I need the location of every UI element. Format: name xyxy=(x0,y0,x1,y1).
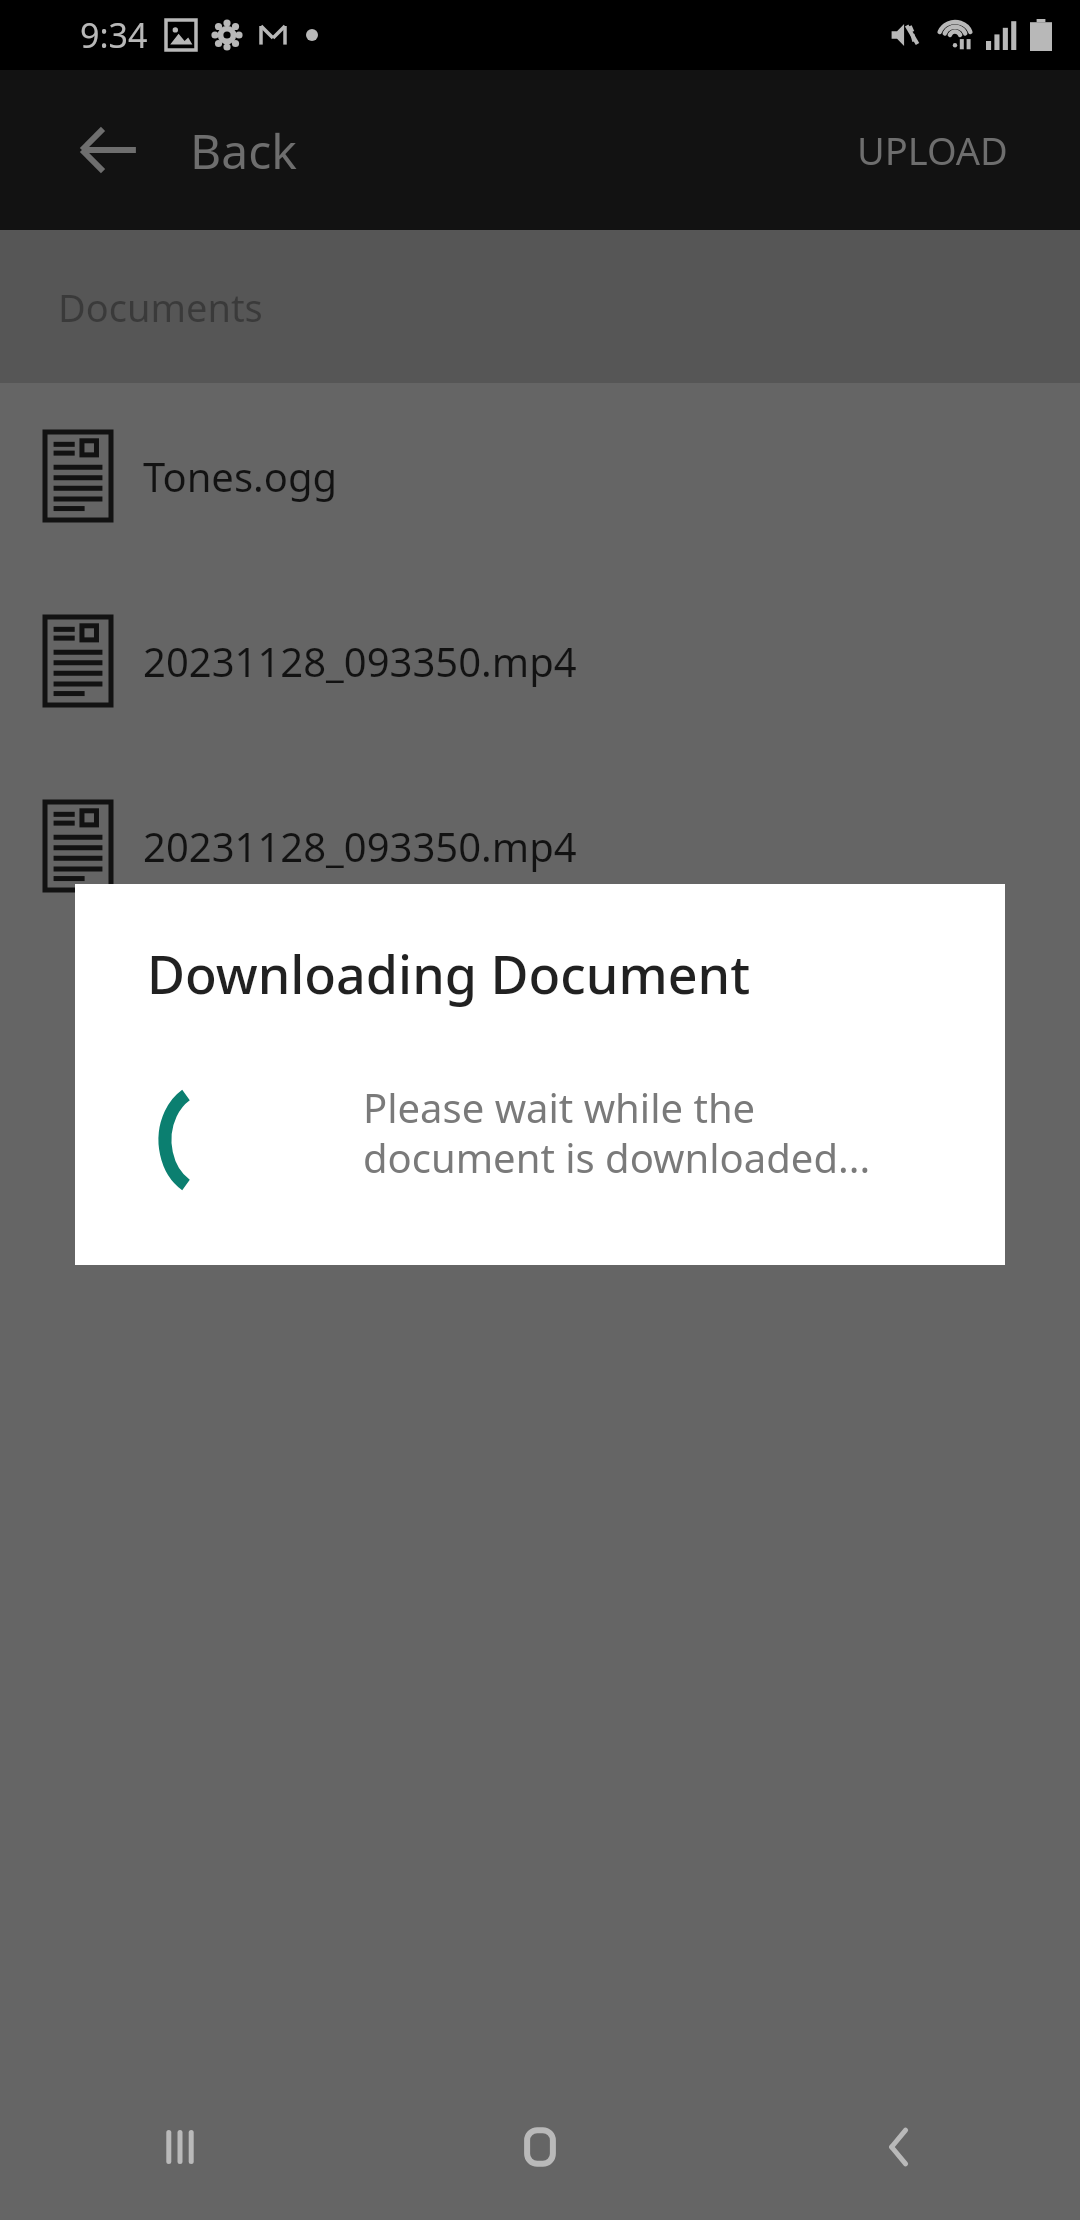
button[interactable]: Tones.ogg xyxy=(0,383,1080,568)
staticText: Tones.ogg xyxy=(143,449,338,503)
staticText: Downloading Document xyxy=(147,938,751,1009)
button[interactable]: Back xyxy=(720,2074,1080,2220)
button[interactable]: 20231128_093350.mp4 xyxy=(0,568,1080,753)
staticText: Documents xyxy=(58,281,263,333)
staticText: 9:34 xyxy=(80,12,148,58)
button[interactable]: Back xyxy=(58,100,158,200)
button[interactable]: 20231128_093350.mp4 xyxy=(0,753,1080,938)
button[interactable]: Home xyxy=(360,2074,720,2220)
staticText: 20231128_093350.mp4 xyxy=(143,819,577,873)
staticText: Please wait while the document is downlo… xyxy=(363,1080,871,1185)
staticText: Back xyxy=(190,118,297,183)
button[interactable]: Recents xyxy=(0,2074,360,2220)
staticText: 20231128_093350.mp4 xyxy=(143,634,577,688)
staticText: UPLOAD xyxy=(857,124,1008,176)
button[interactable]: UPLOAD xyxy=(785,94,1080,206)
